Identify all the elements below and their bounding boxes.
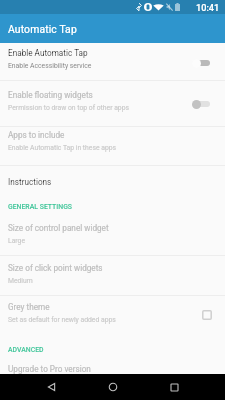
staticText: Automatic Tap: [8, 23, 77, 35]
button[interactable]: Upgrade to Pro version: [0, 360, 225, 374]
button[interactable]: Home: [92, 374, 132, 400]
staticText: Instructions: [8, 177, 52, 187]
button[interactable]: Enable floating widgets: [0, 81, 225, 126]
staticText: Size of click point widgets: [8, 263, 103, 273]
staticText: GENERAL SETTINGS: [8, 203, 72, 211]
staticText: Size of control panel widget: [8, 223, 109, 233]
button[interactable]: Grey theme: [0, 296, 225, 334]
staticText: Enable Automatic Tap: [8, 48, 88, 58]
staticText: Apps to include: [8, 130, 65, 140]
staticText: Enable Automatic Tap in these apps: [8, 144, 117, 152]
button[interactable]: Size of click point widgets: [0, 256, 225, 295]
staticText: Grey theme: [8, 302, 50, 312]
staticText: Upgrade to Pro version: [8, 364, 91, 374]
button[interactable]: Instructions: [0, 166, 225, 195]
button[interactable]: Enable Automatic Tap: [0, 43, 225, 80]
staticText: Enable Accessibility service: [8, 62, 92, 70]
staticText: Enable floating widgets: [8, 90, 93, 100]
button[interactable]: Recent apps: [154, 374, 194, 400]
staticText: Set as default for newly added apps: [8, 316, 116, 324]
staticText: 10:41: [196, 2, 220, 13]
staticText: Large: [8, 237, 26, 245]
staticText: ADVANCED: [8, 346, 44, 354]
button[interactable]: Back: [30, 374, 70, 400]
staticText: Medium: [8, 277, 33, 285]
button[interactable]: Size of control panel widget: [0, 218, 225, 255]
staticText: Permission to draw on top of other apps: [8, 104, 130, 112]
button[interactable]: Apps to include: [0, 127, 225, 165]
